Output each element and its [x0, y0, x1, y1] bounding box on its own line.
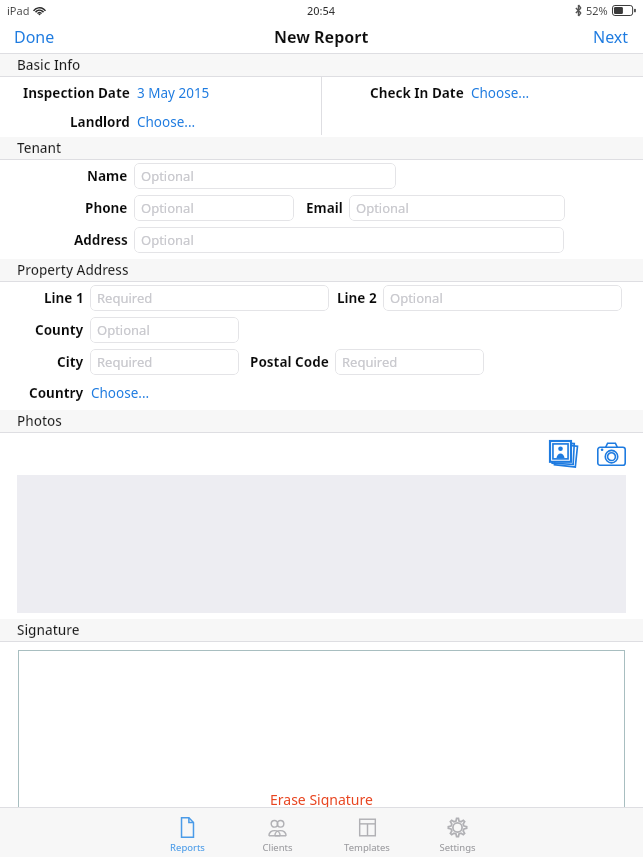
staticText: Basic Info [17, 56, 81, 74]
staticText: 52% [586, 3, 608, 18]
staticText: Tenant [17, 139, 62, 157]
staticText: Optional [141, 199, 194, 217]
staticText: County [35, 321, 84, 339]
button[interactable]: Erase Signature [256, 784, 387, 815]
staticText: Inspection Date [23, 84, 130, 102]
button[interactable]: Optional [134, 195, 294, 221]
button[interactable]: 3 May 2015 [136, 81, 211, 105]
button[interactable]: Take photo with camera [592, 435, 630, 473]
button[interactable]: Optional [383, 285, 622, 311]
staticText: Choose... [91, 384, 150, 402]
button[interactable]: Clients [249, 812, 305, 854]
staticText: Clients [262, 841, 293, 854]
button[interactable]: Required [335, 349, 484, 375]
staticText: iPad [7, 3, 30, 18]
staticText: Landlord [70, 113, 130, 131]
staticText: Required [97, 353, 153, 371]
button[interactable]: Erase Signature [18, 650, 625, 815]
staticText: Choose... [137, 113, 196, 131]
staticText: Postal Code [250, 353, 329, 371]
staticText: Optional [97, 321, 150, 339]
staticText: Required [342, 353, 398, 371]
button[interactable]: Optional [349, 195, 565, 221]
button[interactable]: Templates [339, 812, 395, 854]
staticText: 20:54 [307, 3, 336, 18]
staticText: Address [74, 231, 128, 249]
staticText: Phone [85, 199, 128, 217]
staticText: New Report [274, 26, 369, 48]
staticText: Choose... [471, 84, 530, 102]
button[interactable]: Required [90, 349, 239, 375]
staticText: Country [29, 384, 84, 402]
button[interactable]: Choose... [90, 381, 151, 405]
staticText: Optional [356, 199, 409, 217]
staticText: Property Address [17, 261, 129, 279]
button[interactable]: Choose... [470, 81, 531, 105]
staticText: Check In Date [370, 84, 464, 102]
button[interactable]: Optional [90, 317, 239, 343]
staticText: Templates [344, 841, 390, 854]
staticText: Email [306, 199, 343, 217]
staticText: Settings [439, 841, 476, 854]
button[interactable]: Next [583, 22, 643, 52]
staticText: Reports [170, 841, 205, 854]
staticText: Done [14, 26, 55, 48]
staticText: 3 May 2015 [137, 84, 210, 102]
staticText: Line 2 [337, 289, 377, 307]
button[interactable]: Reports [159, 812, 215, 854]
staticText: Optional [141, 231, 194, 249]
staticText: Optional [390, 289, 443, 307]
staticText: City [57, 353, 84, 371]
button[interactable]: Done [0, 22, 65, 52]
button[interactable]: Choose... [136, 110, 197, 134]
button[interactable]: Required [90, 285, 329, 311]
button[interactable]: Choose photos from library [546, 435, 584, 473]
staticText: Signature [17, 621, 80, 639]
staticText: Line 1 [44, 289, 84, 307]
staticText: Required [97, 289, 153, 307]
staticText: Optional [141, 167, 194, 185]
staticText: Photos [17, 412, 62, 430]
button[interactable]: Optional [134, 227, 564, 253]
button[interactable]: Settings [429, 812, 485, 854]
staticText: Name [87, 167, 128, 185]
staticText: Erase Signature [270, 790, 373, 809]
staticText: Next [593, 26, 629, 48]
button[interactable]: Optional [134, 163, 396, 189]
